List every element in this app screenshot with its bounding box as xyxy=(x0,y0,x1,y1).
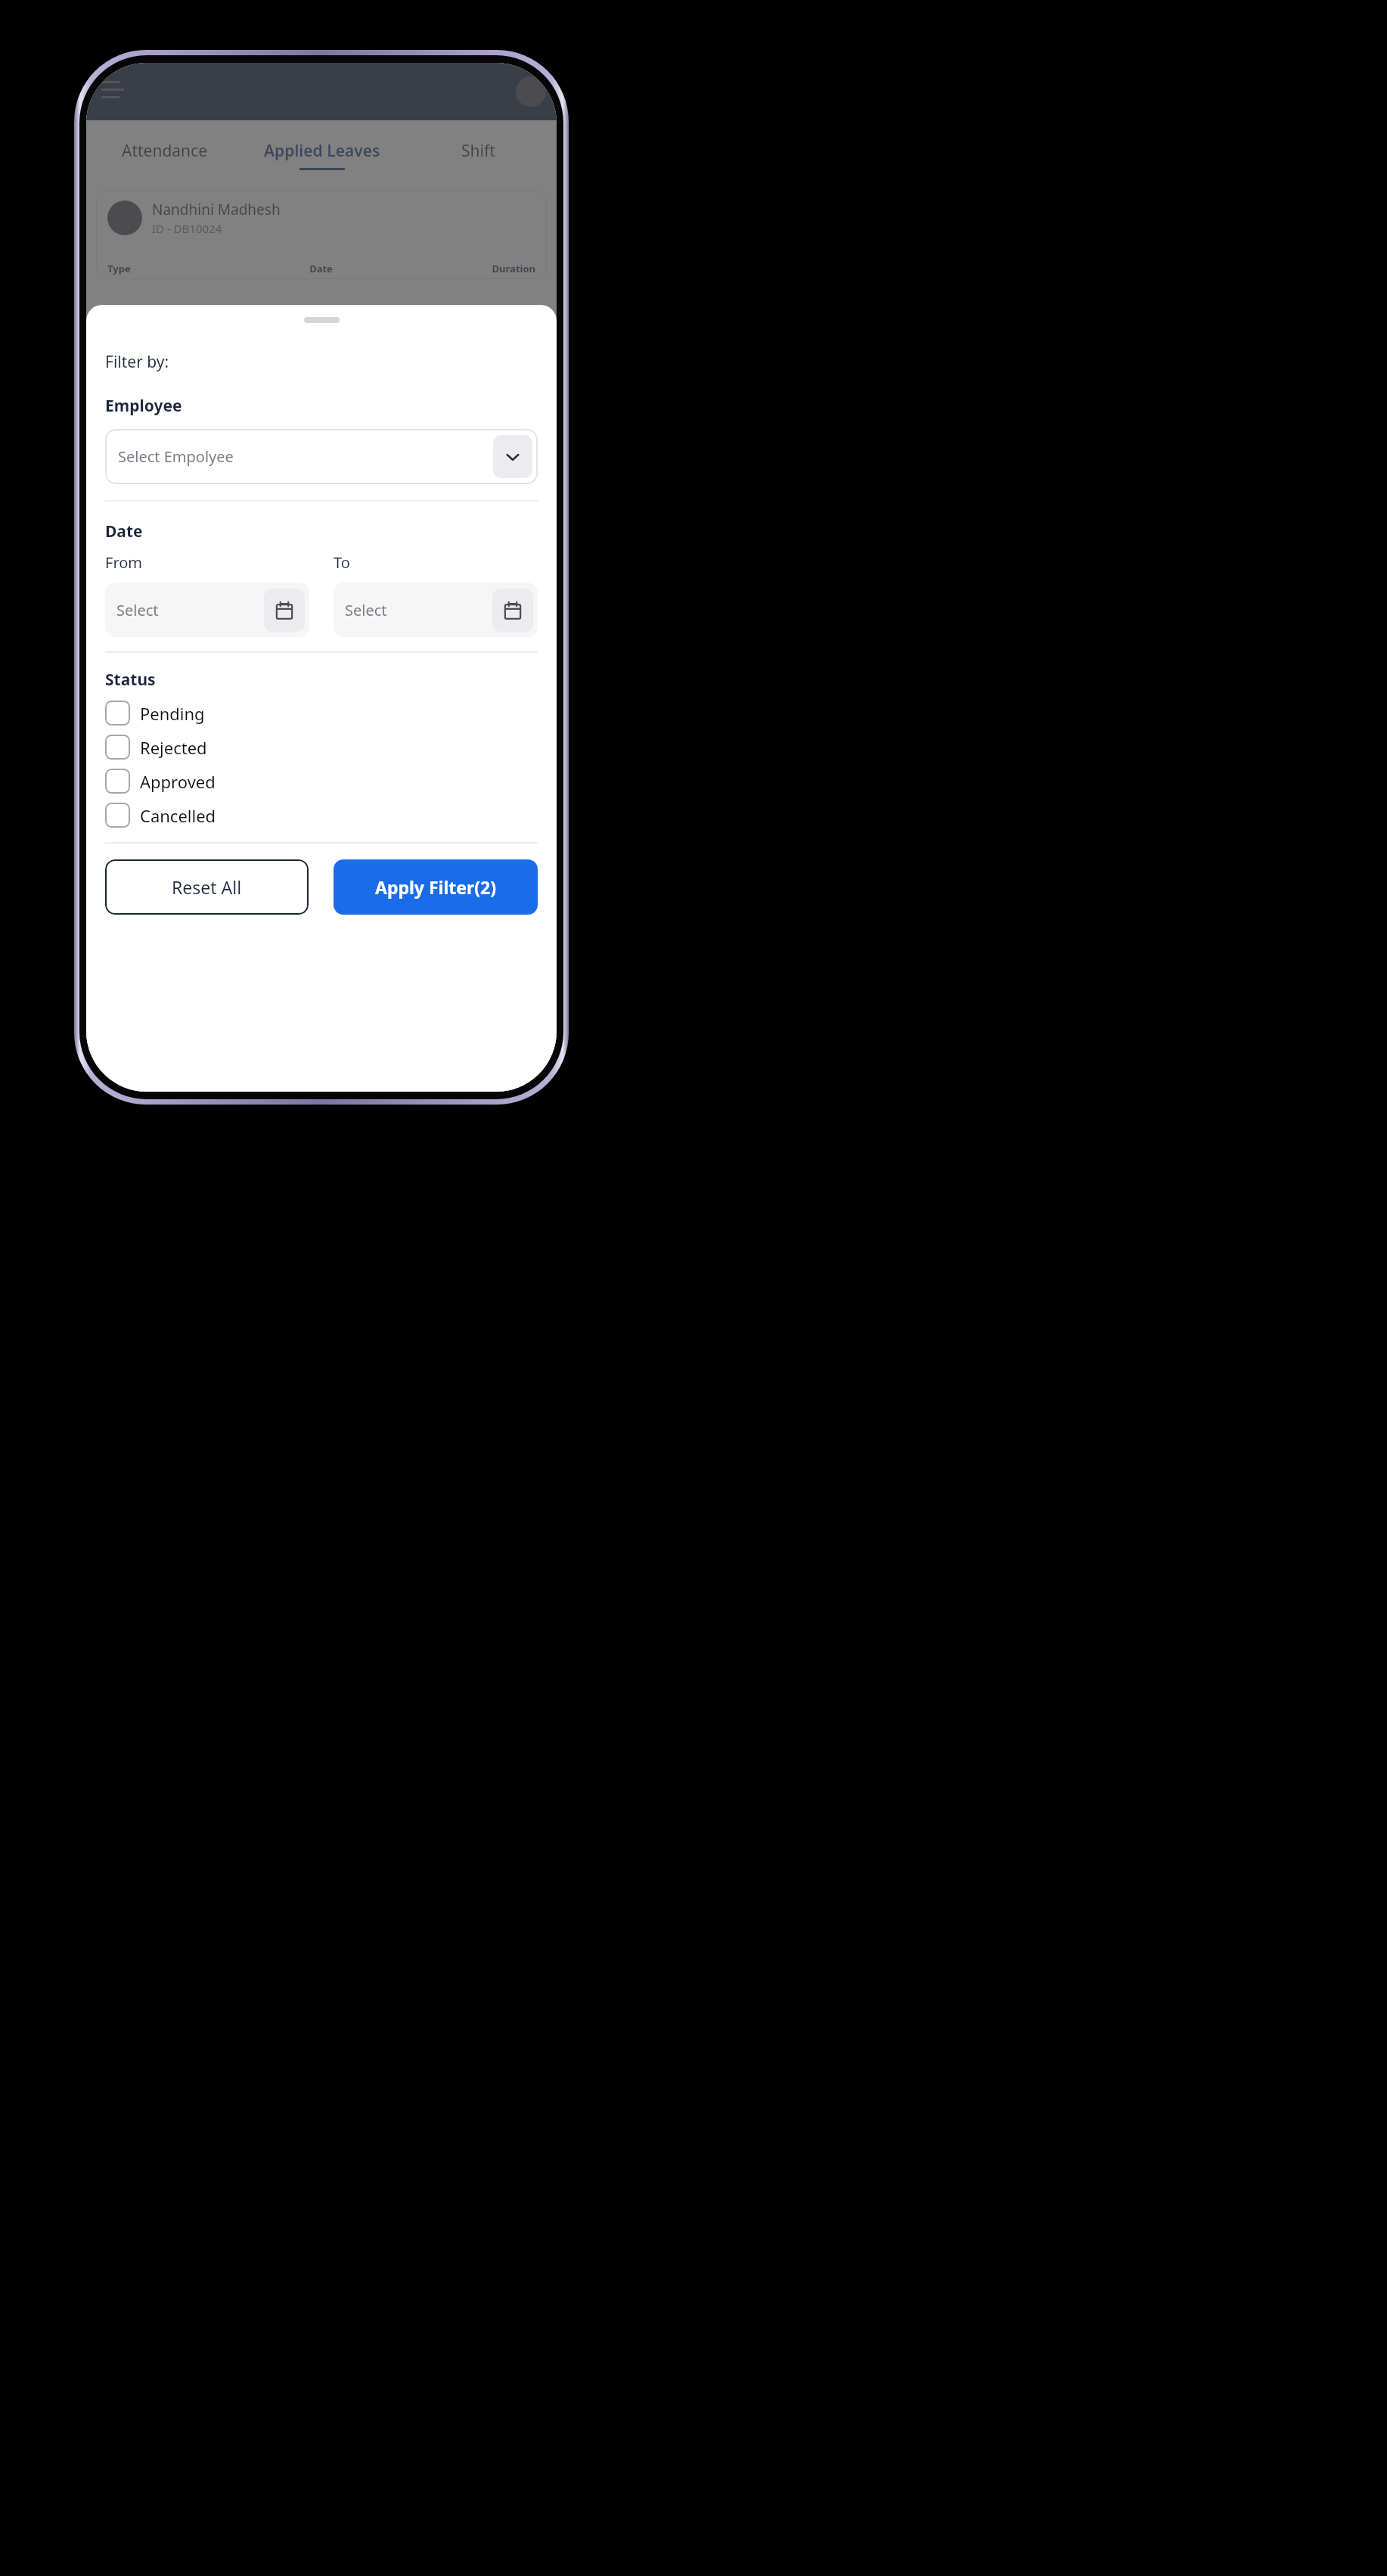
button[interactable]: Cancelled xyxy=(105,803,538,828)
button[interactable]: Reset All xyxy=(105,859,309,915)
staticText: Select xyxy=(116,600,159,620)
button[interactable]: Pending xyxy=(105,701,538,726)
other: Pick date xyxy=(264,589,305,632)
staticText: Type xyxy=(107,262,250,275)
staticText: Pending xyxy=(140,702,205,725)
staticText: ID - DB10024 xyxy=(152,221,222,236)
button[interactable]: Select xyxy=(334,583,538,637)
staticText: To xyxy=(334,552,350,573)
staticText: Status xyxy=(105,669,156,691)
button[interactable]: Select Empolyee xyxy=(105,429,538,484)
button[interactable]: Applied Leaves xyxy=(244,120,400,190)
button[interactable]: Menu xyxy=(101,81,124,102)
staticText: Reset All xyxy=(172,875,242,899)
button[interactable]: Approved xyxy=(105,769,538,794)
staticText: Rejected xyxy=(140,736,207,759)
button[interactable]: Select xyxy=(105,583,309,637)
button[interactable]: Shift xyxy=(400,120,557,190)
staticText: Date xyxy=(105,520,143,542)
other: Open employee list xyxy=(493,435,532,478)
staticText: Employee xyxy=(105,395,182,417)
button[interactable]: Apply Filter(2) xyxy=(334,859,538,915)
staticText: Applied Leaves xyxy=(264,140,380,162)
staticText: From xyxy=(105,552,143,573)
staticText: Date xyxy=(250,262,393,275)
staticText: Filter by: xyxy=(105,351,169,373)
staticText: Select Empolyee xyxy=(118,446,234,467)
staticText: Cancelled xyxy=(140,804,216,827)
staticText: Attendance xyxy=(122,140,208,162)
staticText: Approved xyxy=(140,770,216,793)
button[interactable]: Profile xyxy=(516,76,546,107)
staticText: Apply Filter(2) xyxy=(375,875,497,899)
button[interactable] xyxy=(86,63,557,1092)
button[interactable]: Rejected xyxy=(105,735,538,760)
other: Pick date xyxy=(492,589,533,632)
staticText: Select xyxy=(345,600,387,620)
staticText: Duration xyxy=(393,262,535,275)
staticText: Shift xyxy=(461,140,495,162)
button[interactable]: Attendance xyxy=(86,120,244,190)
staticText: Nandhini Madhesh xyxy=(152,200,281,219)
